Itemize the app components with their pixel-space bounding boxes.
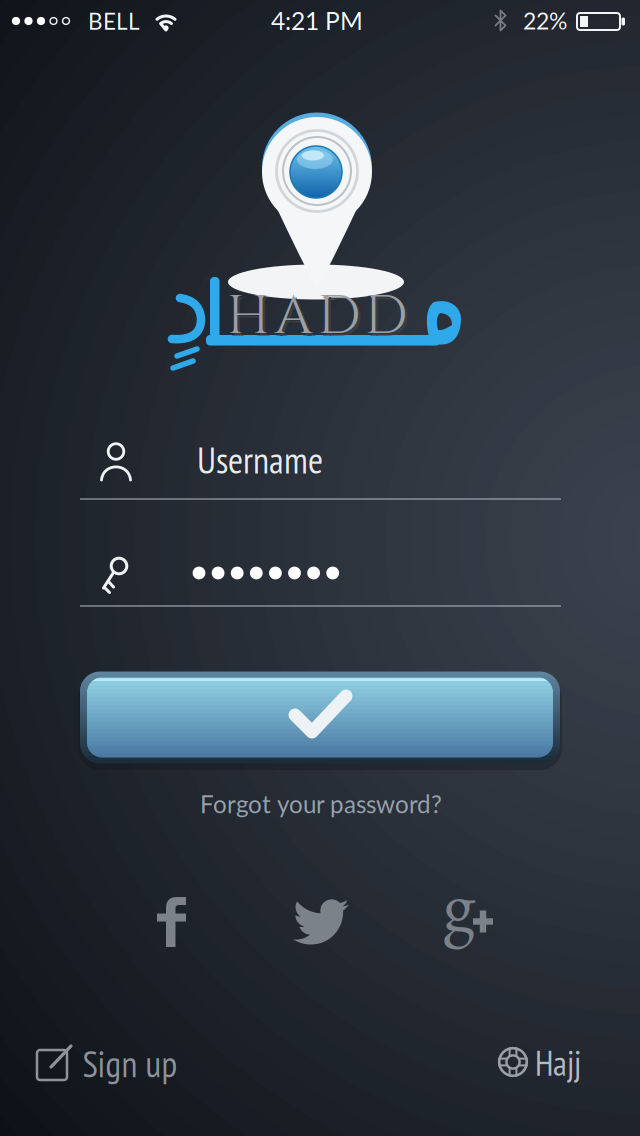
button[interactable]: Twitter	[0, 0, 640, 1136]
button[interactable]: Sign up	[0, 0, 640, 1136]
button[interactable]: Facebook	[0, 0, 640, 1136]
staticText: g	[443, 856, 474, 950]
staticText: BELL	[88, 7, 140, 34]
button[interactable]: Hajj	[0, 0, 640, 1136]
staticText: Forgot your password?	[200, 789, 442, 818]
staticText: Username	[197, 436, 323, 484]
staticText: Sign up	[82, 1041, 177, 1087]
staticText: HADD	[226, 281, 407, 353]
staticText: Hajj	[535, 1041, 581, 1085]
staticText: HADD	[229, 284, 410, 355]
staticText: 4:21 PM	[271, 6, 363, 35]
button[interactable]: Forgot your password?	[0, 0, 640, 1136]
button[interactable]: Log in	[0, 0, 640, 1136]
staticText: 22%	[523, 7, 567, 34]
button[interactable]: Google Plus	[0, 0, 640, 1136]
